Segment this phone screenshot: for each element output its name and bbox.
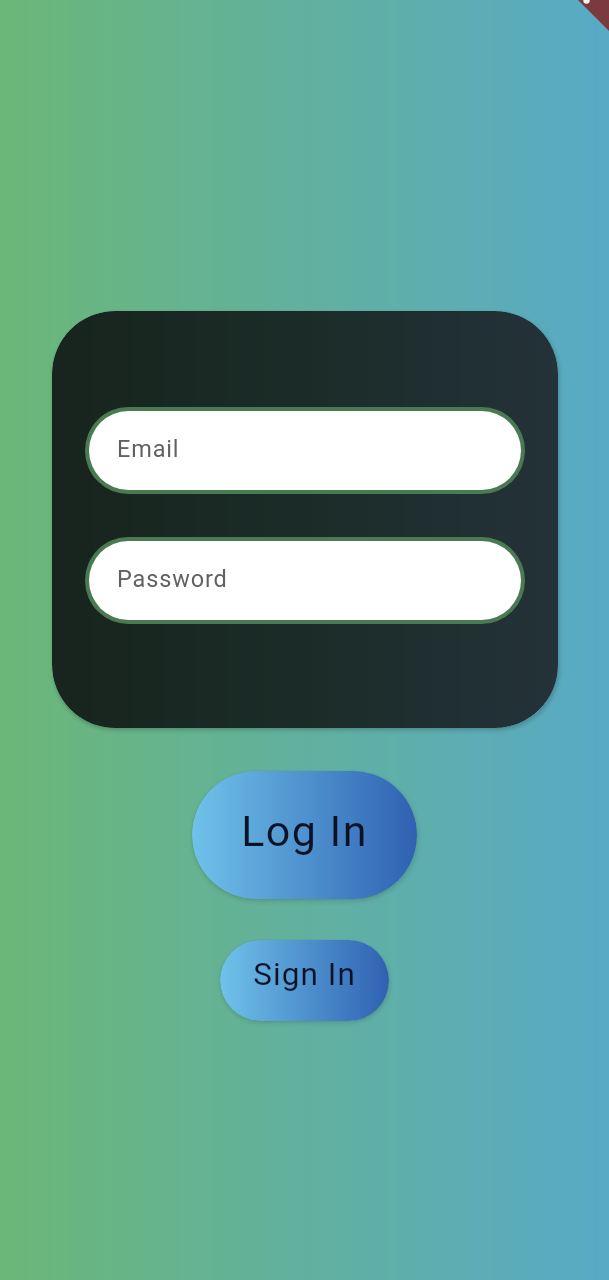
button[interactable]: Password [89,541,521,620]
staticText: Email [117,435,180,463]
button[interactable]: Sign In [220,940,389,1021]
staticText: Sign In [253,956,356,993]
staticText: Password [117,565,228,593]
staticText: Log In [241,806,368,856]
button[interactable]: Email [89,411,521,490]
button[interactable]: Log In [192,771,417,899]
